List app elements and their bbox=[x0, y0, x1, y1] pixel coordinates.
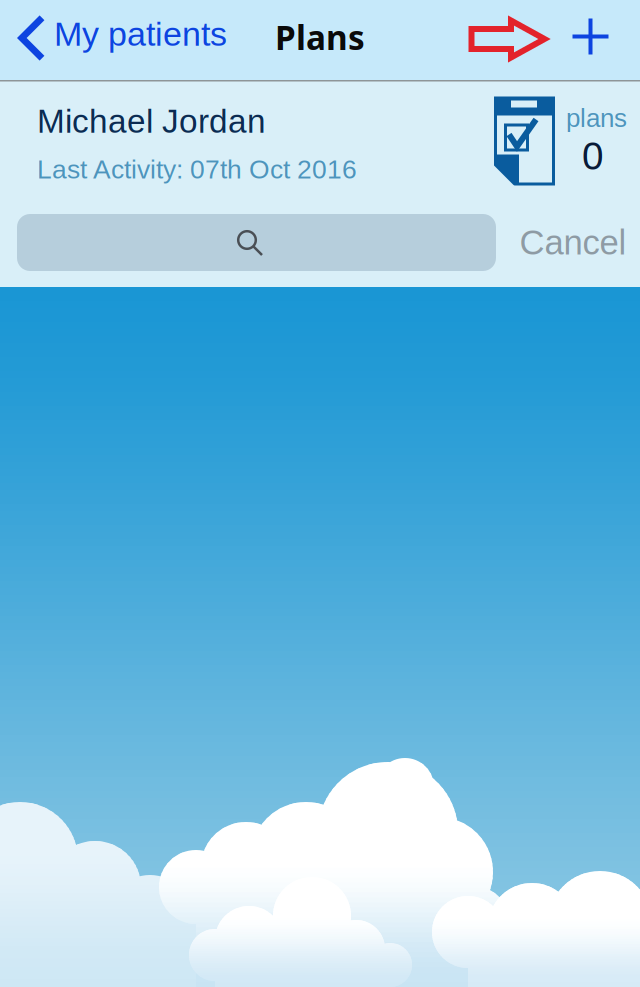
button[interactable]: Cancel bbox=[513, 214, 633, 271]
staticText: Last Activity: 07th Oct 2016 bbox=[37, 154, 357, 184]
staticText: My patients bbox=[54, 15, 227, 53]
staticText: 0 bbox=[582, 134, 604, 178]
staticText: Plans bbox=[275, 14, 365, 60]
button[interactable]: Add plan bbox=[554, 0, 627, 76]
button[interactable]: Search bbox=[17, 214, 496, 271]
staticText: Cancel bbox=[519, 223, 626, 262]
staticText: plans bbox=[566, 103, 627, 132]
button[interactable]: My patients bbox=[0, 0, 239, 74]
staticText: Michael Jordan bbox=[37, 102, 266, 140]
